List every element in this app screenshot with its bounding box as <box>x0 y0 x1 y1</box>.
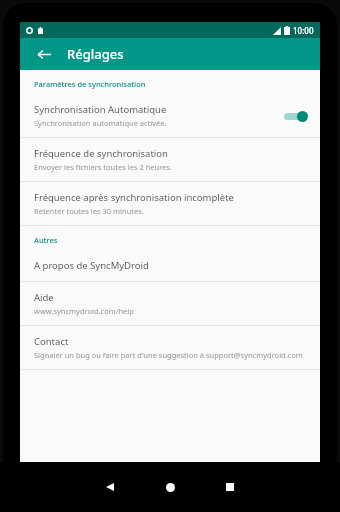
staticText: Autres <box>34 235 58 245</box>
staticText: Synchronisation Automatique <box>34 103 167 116</box>
staticText: Signaler un bug ou faire part d'une sugg… <box>34 350 303 360</box>
button[interactable]: Aide <box>20 282 320 325</box>
staticText: Aide <box>34 291 54 304</box>
button[interactable]: A propos de SyncMyDroid <box>20 250 320 281</box>
staticText: Retenter toutes les 30 minutes. <box>34 206 144 216</box>
staticText: 10:00 <box>293 25 314 36</box>
staticText: Paramètres de synchronisation <box>34 79 146 89</box>
button[interactable]: Fréquence de synchronisation <box>20 138 320 181</box>
staticText: Réglages <box>67 45 124 63</box>
button[interactable]: Back <box>32 42 56 66</box>
staticText: A propos de SyncMyDroid <box>34 259 149 272</box>
button[interactable]: Recent apps <box>213 470 247 504</box>
button[interactable]: Back <box>93 470 127 504</box>
staticText: Contact <box>34 335 69 348</box>
staticText: Fréquence de synchronisation <box>34 147 168 160</box>
button[interactable]: Fréquence après synchronisation incomplè… <box>20 182 320 225</box>
button[interactable]: Automatic sync toggle <box>282 109 308 123</box>
staticText: Synchronisation automatique activée. <box>34 118 167 128</box>
button[interactable]: Contact <box>20 326 320 369</box>
staticText: Envoyer les fichiers toutes les 2 heures… <box>34 162 172 172</box>
button[interactable]: Synchronisation Automatique <box>20 94 320 137</box>
staticText: Fréquence après synchronisation incomplè… <box>34 191 234 204</box>
staticText: www.syncmydroid.com/help <box>34 306 134 316</box>
button[interactable]: Home <box>153 470 187 504</box>
